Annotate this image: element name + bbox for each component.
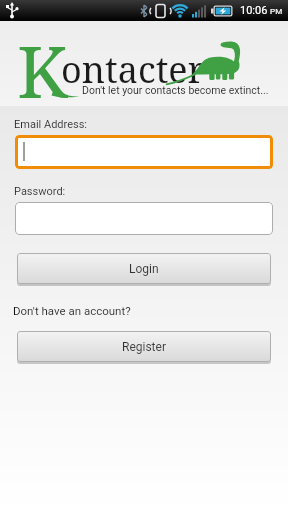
staticText: Password: [14,185,66,198]
staticText: ontacter [61,45,205,94]
button[interactable] [15,202,273,235]
staticText: Email Address: [14,118,88,131]
staticText: Login [129,262,159,276]
staticText: 10:06 PM [240,4,283,17]
button[interactable]: Login [17,253,271,284]
staticText: Don't have an account? [13,304,131,317]
staticText: K [17,21,68,106]
button[interactable] [15,135,273,169]
staticText: Register [122,340,166,354]
staticText: Don't let your contacts become extinct..… [82,84,269,96]
button[interactable]: Register [17,331,271,362]
